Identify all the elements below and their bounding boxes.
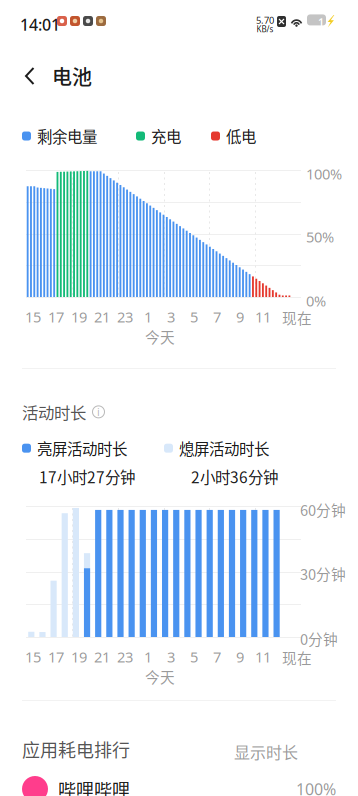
staticText: 活动时长 (22, 400, 86, 424)
staticText: 今天 (145, 666, 175, 687)
staticText: 1 (318, 15, 324, 29)
staticText: 11 (255, 647, 271, 666)
staticText: 哔哩哔哩 (58, 776, 130, 796)
staticText: 3 (167, 647, 175, 666)
staticText: 50% (306, 227, 334, 246)
staticText: 60分钟 (300, 499, 346, 520)
staticText: 21 (94, 307, 110, 326)
staticText: 应用耗电排行 (22, 736, 130, 762)
staticText: i (97, 405, 100, 419)
staticText: 现在 (282, 307, 312, 328)
staticText: 5.70 (256, 14, 274, 26)
staticText: 1 (144, 647, 152, 666)
staticText: 1 (144, 307, 152, 326)
staticText: 0% (306, 291, 326, 310)
staticText: 7 (213, 647, 221, 666)
staticText: 17 (48, 307, 64, 326)
staticText: 17小时27分钟 (39, 465, 135, 488)
button[interactable]: Back (18, 61, 42, 91)
staticText: 2小时36分钟 (191, 465, 278, 488)
staticText: 现在 (282, 647, 312, 668)
staticText: 显示时长 (234, 740, 298, 763)
staticText: 电池 (52, 61, 92, 90)
staticText: 100% (306, 164, 342, 183)
staticText: 5 (190, 647, 198, 666)
staticText: 11 (255, 307, 271, 326)
staticText: 0分钟 (300, 628, 338, 649)
staticText: 低电 (226, 125, 256, 147)
staticText: 23 (117, 647, 133, 666)
staticText: 剩余电量 (37, 125, 97, 147)
staticText: 19 (71, 307, 87, 326)
staticText: 熄屏活动时长 (179, 437, 269, 459)
staticText: 充电 (151, 125, 181, 147)
staticText: 17 (48, 647, 64, 666)
staticText: 19 (71, 647, 87, 666)
staticText: 7 (213, 307, 221, 326)
staticText: 9 (236, 307, 244, 326)
staticText: 5 (190, 307, 198, 326)
staticText: 14:01 (20, 14, 60, 35)
staticText: 23 (117, 307, 133, 326)
staticText: 9 (236, 647, 244, 666)
staticText: 15 (25, 647, 41, 666)
staticText: KB/s (256, 24, 273, 34)
staticText: 30分钟 (300, 563, 346, 584)
button[interactable]: 哔哩哔哩 (0, 772, 358, 796)
staticText: 亮屏活动时长 (37, 437, 127, 459)
staticText: 100% (296, 778, 336, 796)
staticText: 15 (25, 307, 41, 326)
staticText: 21 (94, 647, 110, 666)
staticText: 3 (167, 307, 175, 326)
staticText: 今天 (145, 326, 175, 347)
